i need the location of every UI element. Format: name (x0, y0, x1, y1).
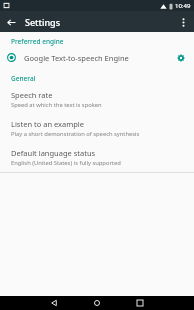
staticText: Google Text-to-speech Engine (24, 53, 174, 63)
staticText: General (11, 74, 36, 83)
staticText: Play a short demonstration of speech syn… (11, 130, 140, 138)
button[interactable]: Back (47, 296, 61, 310)
staticText: English (United States) is fully support… (11, 159, 121, 167)
button[interactable]: More options (174, 13, 192, 31)
button[interactable]: Back (2, 13, 20, 31)
staticText: Settings (25, 16, 61, 28)
staticText: Preferred engine (11, 37, 64, 46)
button[interactable]: Google Text-to-speech Engine (0, 48, 194, 67)
button[interactable]: Recent apps (133, 296, 147, 310)
button[interactable]: Engine settings (174, 51, 187, 64)
button[interactable]: Default language status (0, 143, 194, 172)
staticText: Default language status (11, 148, 96, 158)
button[interactable]: Speech rate (0, 85, 194, 114)
staticText: Speech rate (11, 90, 53, 100)
staticText: 10:49 (175, 2, 191, 10)
button[interactable]: Home (90, 296, 104, 310)
staticText: Listen to an example (11, 119, 85, 129)
staticText: Speed at which the text is spoken (11, 101, 102, 109)
button[interactable]: Listen to an example (0, 114, 194, 143)
